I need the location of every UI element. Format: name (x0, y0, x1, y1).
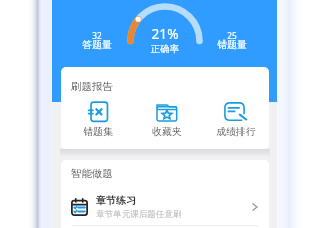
button[interactable]: 成绩排行 (201, 100, 269, 142)
staticText: 正确率 (115, 43, 215, 55)
staticText: 收藏夹 (132, 126, 202, 138)
staticText: 错题量 (182, 39, 282, 51)
other: Open 章节练习 (249, 201, 261, 213)
staticText: 32 (47, 30, 147, 41)
staticText: 25 (182, 30, 282, 41)
button[interactable]: 错题集 (63, 100, 133, 142)
staticText: 错题集 (63, 126, 133, 138)
staticText: 答题量 (47, 39, 147, 51)
staticText: 章节练习 (96, 194, 136, 207)
staticText: 刷题报告 (71, 80, 113, 93)
button[interactable]: 收藏夹 (132, 100, 202, 142)
button[interactable]: 章节练习 (61, 187, 269, 226)
staticText: 智能做题 (71, 167, 113, 180)
staticText: 21% (115, 24, 215, 43)
staticText: 成绩排行 (201, 126, 269, 138)
staticText: 章节单元课后题任意刷 (96, 209, 182, 220)
